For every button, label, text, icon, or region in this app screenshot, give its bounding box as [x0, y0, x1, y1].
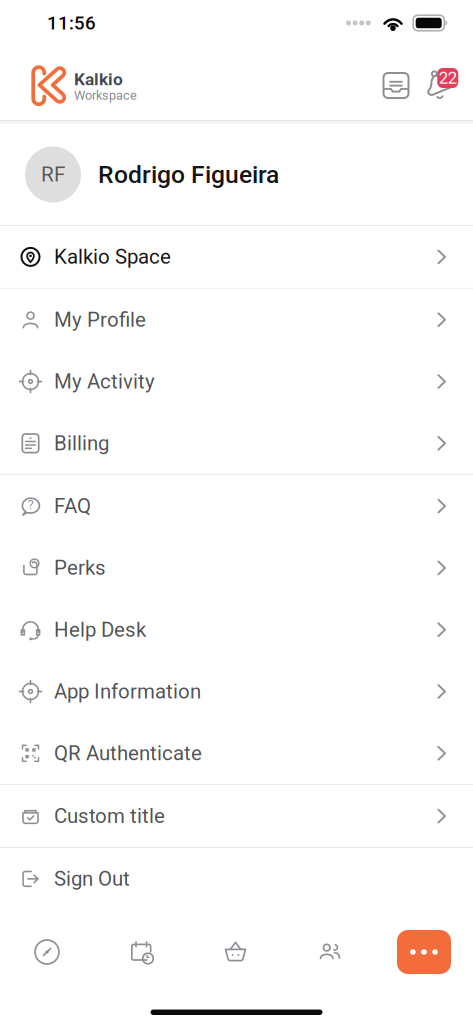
button[interactable]: More [397, 930, 451, 974]
button[interactable]: App Information [0, 661, 473, 722]
button[interactable]: Inbox [379, 58, 413, 107]
button[interactable]: My Profile [0, 289, 473, 351]
staticText: Sign Out [54, 867, 130, 891]
staticText: QR Authenticate [54, 741, 202, 765]
button[interactable]: QR Authenticate [0, 722, 473, 784]
staticText: 22 [439, 68, 457, 88]
button[interactable]: Schedule [114, 926, 168, 978]
staticText: App Information [54, 679, 201, 703]
button[interactable]: Custom title [0, 785, 473, 847]
button[interactable]: Help Desk [0, 599, 473, 661]
button[interactable]: Kalkio Space [0, 226, 473, 288]
button[interactable]: Notifications [425, 60, 459, 106]
button[interactable]: RF [0, 124, 473, 225]
staticText: Perks [54, 556, 106, 580]
button[interactable]: Explore [20, 926, 74, 978]
button[interactable]: Sign Out [0, 848, 473, 910]
staticText: 11:56 [47, 12, 96, 34]
staticText: ? [27, 497, 33, 512]
button[interactable]: Kalkio [32, 59, 137, 107]
staticText: Rodrigo Figueira [98, 160, 279, 189]
staticText: Custom title [54, 804, 165, 828]
staticText: Billing [54, 431, 109, 455]
button[interactable]: Billing [0, 412, 473, 474]
staticText: FAQ [54, 494, 91, 518]
staticText: RF [41, 162, 65, 187]
staticText: My Activity [54, 369, 155, 393]
button[interactable]: Community [303, 926, 357, 978]
button[interactable]: Shop [208, 926, 262, 978]
staticText: Workspace [74, 88, 137, 103]
button[interactable]: My Activity [0, 351, 473, 412]
button[interactable]: Perks [0, 537, 473, 599]
staticText: Kalkio Space [54, 245, 171, 269]
staticText: Help Desk [54, 618, 146, 642]
staticText: My Profile [54, 308, 146, 332]
button[interactable]: ? [0, 475, 473, 537]
staticText: Kalkio [74, 69, 123, 89]
